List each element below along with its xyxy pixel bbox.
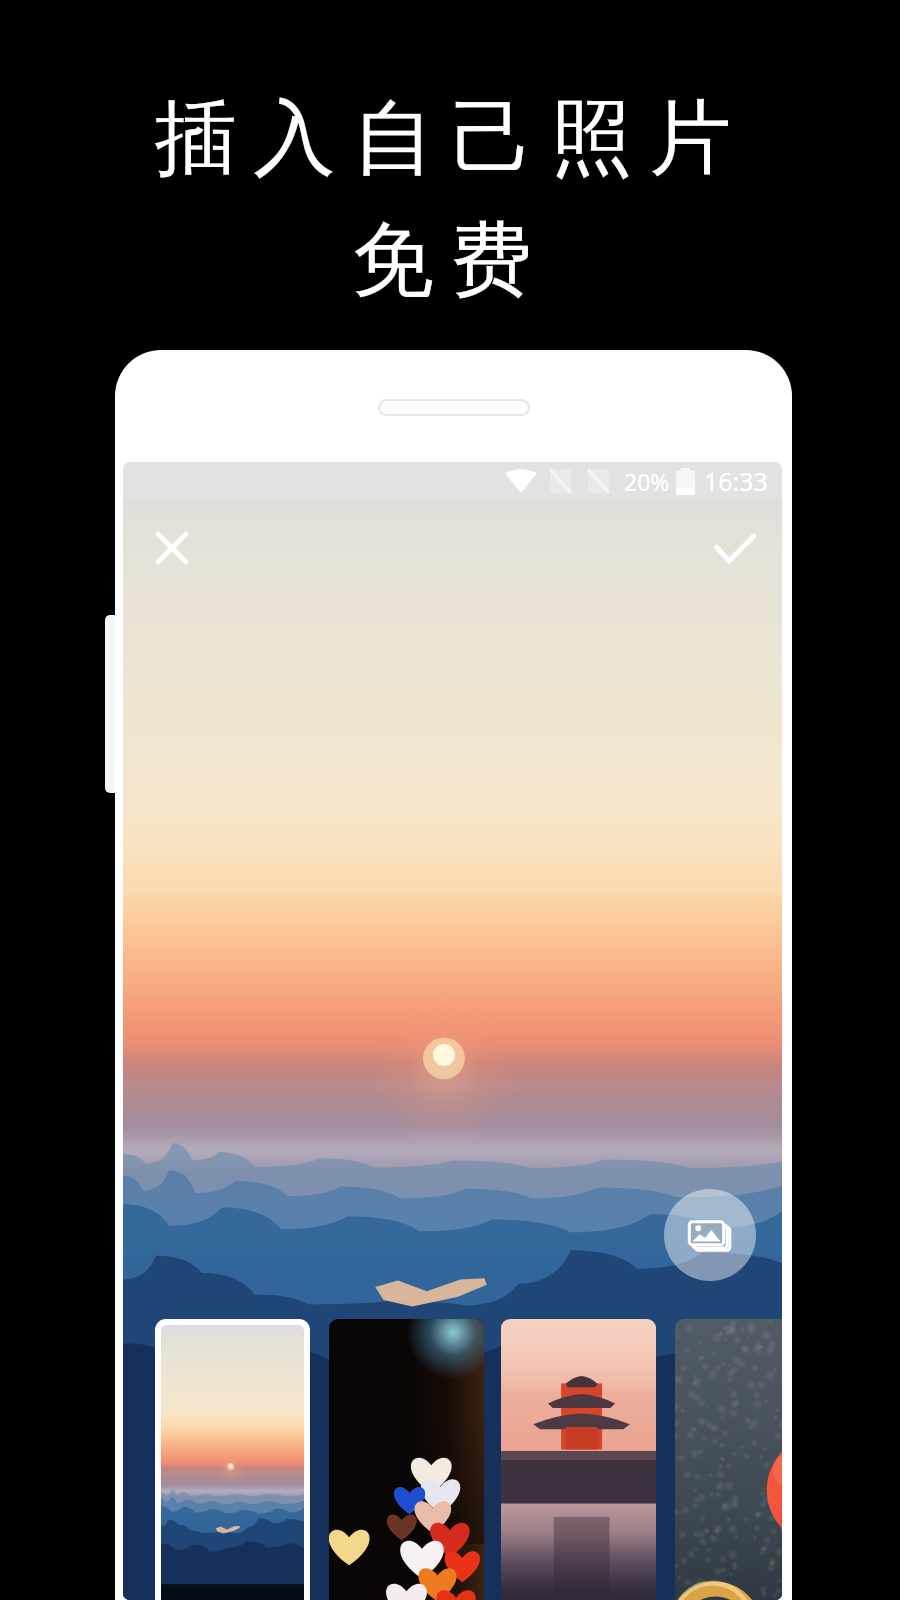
button[interactable]: Confirm [702, 515, 768, 581]
button[interactable]: Choose photo [664, 1189, 756, 1281]
staticText: 插入自己照片 [146, 87, 740, 190]
staticText: 16:33 [704, 464, 768, 498]
staticText: 免费 [344, 209, 540, 312]
button[interactable]: Palace at dusk photo [501, 1319, 656, 1600]
button[interactable]: Wedding rings photo [675, 1319, 782, 1600]
button[interactable]: Close [139, 515, 205, 581]
button[interactable]: Sunrise over mountains photo [161, 1325, 304, 1600]
staticText: 20% [624, 466, 670, 497]
button[interactable]: Heart bokeh lights photo [329, 1319, 484, 1600]
